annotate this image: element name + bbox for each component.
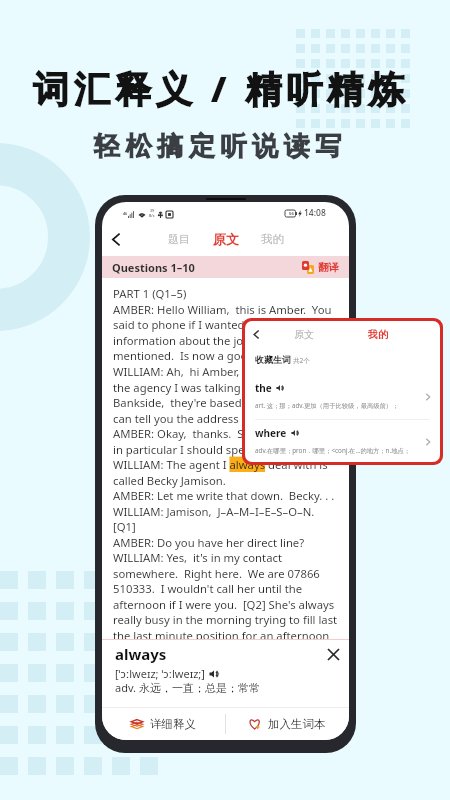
button[interactable]: Back [104, 227, 128, 251]
button[interactable]: where [245, 423, 440, 461]
button[interactable]: 我的 [250, 225, 295, 253]
button[interactable]: Close [323, 644, 343, 664]
button[interactable]: 翻译 [302, 261, 339, 274]
staticText: 翻译 [318, 261, 339, 274]
staticText: WILLIAM: The agent I always deal with is [113, 457, 328, 472]
button[interactable]: Play pronunciation [209, 669, 219, 679]
staticText: the agency I was talking a [113, 380, 250, 395]
staticText: B/s [149, 213, 155, 218]
staticText: AMBER: Hello William, this is Amber. You [113, 302, 332, 317]
staticText: art. 这；那；adv.更加（用于比较级，最高级前）； [255, 401, 399, 410]
button[interactable]: 原文 [294, 328, 314, 341]
staticText: WILLIAM: Ah, hi Amber, [113, 364, 243, 379]
button[interactable]: 详细释义 [102, 708, 225, 740]
button[interactable]: 题目 [157, 225, 201, 253]
staticText: AMBER: Okay, thanks. S [113, 426, 244, 441]
staticText: PART 1 (Q1–5) [113, 286, 187, 301]
button[interactable]: the [245, 378, 440, 416]
staticText: Questions 1–10 [112, 260, 195, 275]
staticText: 共2个 [293, 356, 310, 365]
staticText: 56 [289, 211, 294, 217]
staticText: AMBER: Let me write that down. Becky. . … [113, 488, 335, 503]
staticText: 原文 [213, 231, 239, 247]
staticText: the [255, 381, 272, 395]
staticText: 我的 [261, 232, 284, 246]
button[interactable]: Back [248, 326, 264, 342]
staticText: called Becky Jamison. [113, 473, 229, 488]
staticText: 我的 [368, 328, 388, 341]
staticText: 详细释义 [150, 717, 196, 731]
staticText: 14:08 [304, 207, 326, 219]
staticText: adv. 永远，一直；总是；常常 [115, 680, 260, 695]
staticText: WILLIAM: Yes, it's in my contact [113, 550, 282, 565]
button[interactable]: 加入生词本 [226, 708, 349, 740]
staticText: AMBER: Do you have her direct line? [113, 535, 305, 550]
staticText: 46 [123, 211, 128, 216]
staticText: WILLIAM: Jamison, J–A–M–I–E–S–O–N. [113, 504, 318, 519]
staticText: the last minute position for an afternoo… [113, 628, 330, 639]
staticText: said to phone if I wanted [113, 317, 245, 332]
staticText: where [255, 426, 287, 440]
staticText: can tell you the address n [113, 411, 249, 426]
staticText: adv.在哪里；pron．哪里；<conj.在…的地方；n.地点； [255, 446, 411, 455]
staticText: in particular I should spea [113, 442, 251, 457]
staticText: 加入生词本 [268, 717, 326, 731]
staticText: 收藏生词 [255, 354, 291, 365]
button[interactable]: 原文 [202, 224, 250, 254]
staticText: 原文 [294, 328, 314, 341]
staticText: 题目 [168, 232, 190, 246]
staticText: really busy in the morning trying to fil… [113, 612, 338, 627]
staticText: somewhere. Right here. We are 07866 [113, 566, 320, 581]
staticText: [Q1] [113, 519, 136, 534]
staticText: mentioned. Is now a good [113, 348, 255, 363]
staticText: information about the job [113, 333, 251, 348]
staticText: [ˈɔːlweɪz; ˈɔːlweɪz;] [115, 666, 205, 681]
staticText: Bankside, they're based i [113, 395, 248, 410]
staticText: 39 [150, 208, 155, 213]
staticText: 510333. I wouldn't call her until the [113, 581, 303, 596]
staticText: afternoon if I were you. [Q2] She's alwa… [113, 597, 335, 612]
staticText: 轻松搞定听说读写 [94, 130, 347, 163]
staticText: always [115, 644, 167, 664]
button[interactable]: 我的 [368, 328, 388, 341]
staticText: 词汇释义 / 精听精炼 [33, 64, 409, 113]
